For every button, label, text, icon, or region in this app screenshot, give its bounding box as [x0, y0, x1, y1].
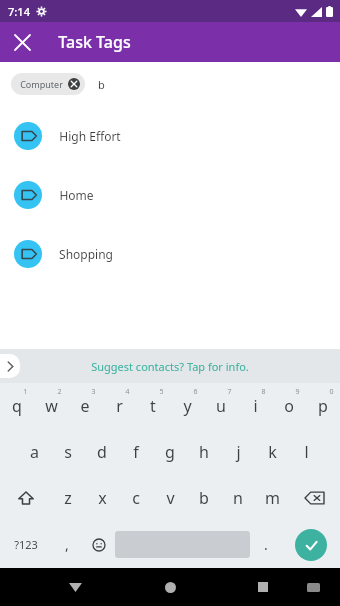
staticText: . [264, 535, 268, 554]
staticText: y [183, 395, 192, 417]
button[interactable]: Home [155, 572, 185, 602]
staticText: 4 [125, 387, 130, 397]
button[interactable]: m [255, 475, 289, 521]
staticText: x [98, 487, 107, 509]
staticText: d [97, 441, 107, 463]
staticText: 0 [329, 387, 334, 397]
staticText: k [268, 441, 277, 463]
button[interactable]: r [102, 383, 136, 429]
staticText: h [199, 441, 209, 463]
button[interactable]: k [255, 429, 289, 475]
button[interactable]: ?123 [0, 521, 51, 568]
button[interactable]: , [51, 521, 83, 568]
staticText: m [265, 487, 280, 509]
button[interactable]: o [272, 383, 306, 429]
button[interactable]: n [221, 475, 255, 521]
staticText: High Effort [59, 128, 121, 144]
button[interactable]: z [51, 475, 85, 521]
button[interactable]: a [17, 429, 51, 475]
staticText: 6 [193, 387, 198, 397]
staticText: 1 [23, 387, 28, 397]
button[interactable]: v [153, 475, 187, 521]
staticText: 7:14 [8, 4, 30, 19]
button[interactable]: Computer [11, 73, 85, 95]
button[interactable]: g [153, 429, 187, 475]
button[interactable]: Close [6, 26, 38, 58]
staticText: l [304, 441, 309, 463]
staticText: ?123 [14, 537, 38, 552]
staticText: 9 [295, 387, 300, 397]
staticText: u [216, 395, 226, 417]
staticText: v [166, 487, 175, 509]
staticText: f [133, 441, 139, 463]
staticText: Shopping [59, 246, 113, 262]
button[interactable]: w [34, 383, 68, 429]
button[interactable]: p [306, 383, 340, 429]
button[interactable]: Recents [248, 572, 278, 602]
button[interactable]: Home [0, 165, 340, 224]
staticText: r [116, 395, 123, 417]
button[interactable]: Switch keyboard [300, 574, 326, 600]
button[interactable]: Emoji [83, 521, 115, 568]
button[interactable]: u [204, 383, 238, 429]
staticText: Task Tags [58, 31, 131, 53]
button[interactable]: Back [60, 572, 90, 602]
button[interactable]: . [250, 521, 282, 568]
staticText: b [199, 487, 209, 509]
button[interactable]: f [119, 429, 153, 475]
staticText: o [284, 395, 294, 417]
button[interactable]: Backspace [289, 475, 340, 521]
staticText: p [318, 395, 328, 417]
staticText: z [64, 487, 72, 509]
staticText: b [98, 77, 105, 92]
button[interactable]: x [85, 475, 119, 521]
button[interactable]: Suggest contacts? Tap for info. [91, 359, 249, 374]
staticText: 5 [159, 387, 164, 397]
staticText: 7 [227, 387, 232, 397]
button[interactable]: Shift [0, 475, 51, 521]
staticText: e [80, 395, 90, 417]
staticText: Computer [20, 78, 63, 90]
staticText: n [233, 487, 243, 509]
button[interactable]: t [136, 383, 170, 429]
button[interactable]: c [119, 475, 153, 521]
staticText: i [253, 395, 258, 417]
button[interactable]: High Effort [0, 106, 340, 165]
staticText: t [150, 395, 156, 417]
staticText: 2 [57, 387, 62, 397]
staticText: 3 [91, 387, 96, 397]
staticText: , [65, 535, 69, 554]
button[interactable]: Shopping [0, 224, 340, 283]
button[interactable]: b [187, 475, 221, 521]
staticText: j [236, 441, 241, 463]
button[interactable]: Expand suggestions [0, 354, 20, 378]
staticText: c [132, 487, 140, 509]
button[interactable]: h [187, 429, 221, 475]
button[interactable]: y [170, 383, 204, 429]
staticText: Home [59, 187, 94, 203]
staticText: q [12, 395, 22, 417]
staticText: 8 [261, 387, 266, 397]
button[interactable]: Done [282, 521, 340, 568]
button[interactable]: l [289, 429, 323, 475]
staticText: w [45, 395, 58, 417]
button[interactable]: i [238, 383, 272, 429]
button[interactable]: s [51, 429, 85, 475]
button[interactable]: d [85, 429, 119, 475]
button[interactable]: j [221, 429, 255, 475]
button[interactable]: q [0, 383, 34, 429]
button[interactable]: e [68, 383, 102, 429]
staticText: s [64, 441, 72, 463]
staticText: a [30, 441, 39, 463]
staticText: g [165, 441, 175, 463]
